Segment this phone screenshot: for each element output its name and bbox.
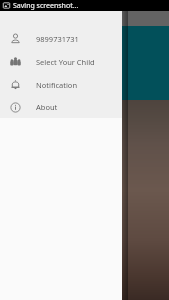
staticText: Notification <box>36 80 78 90</box>
other: Select Your Child <box>10 56 21 67</box>
other: Notification <box>10 79 21 90</box>
staticText: 9899731731 <box>36 34 79 44</box>
button[interactable]: Notification <box>0 73 122 96</box>
other: About <box>10 102 21 113</box>
button[interactable]: Select Your Child <box>0 50 122 73</box>
staticText: Saving screenshot… <box>13 1 79 11</box>
other: Screenshot <box>3 2 10 9</box>
other: Account <box>10 33 21 44</box>
staticText: About <box>36 102 58 112</box>
button[interactable]: Account <box>0 27 122 50</box>
staticText: Select Your Child <box>36 57 95 67</box>
button[interactable]: About <box>0 96 122 118</box>
